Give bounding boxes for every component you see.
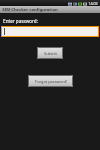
button[interactable]: Submit xyxy=(37,47,63,59)
button[interactable] xyxy=(2,27,98,36)
button[interactable]: Forgot password! xyxy=(28,75,73,87)
staticText: Forgot password! xyxy=(35,79,67,84)
staticText: SIM Checker configuration xyxy=(2,7,58,13)
staticText: 14:03 xyxy=(88,1,98,6)
staticText: Enter password: xyxy=(3,18,38,24)
staticText: Submit xyxy=(44,51,57,56)
